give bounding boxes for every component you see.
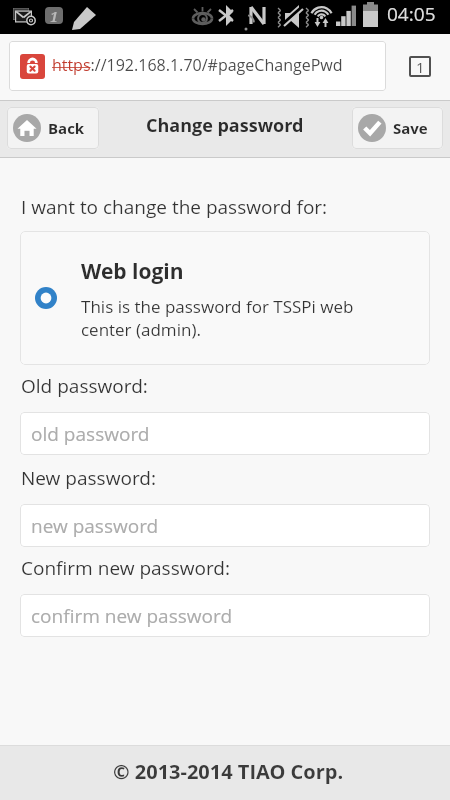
- button[interactable]: Back: [7, 107, 99, 149]
- staticText: Old password:: [21, 373, 148, 399]
- button[interactable]: Save: [352, 107, 443, 149]
- button[interactable]: confirm new password: [20, 594, 430, 637]
- staticText: confirm new password: [31, 603, 233, 629]
- staticText: 1: [50, 7, 58, 24]
- staticText: Web login: [81, 257, 184, 286]
- staticText: New password:: [21, 465, 156, 491]
- staticText: Back: [48, 118, 85, 138]
- staticText: 04:05: [387, 1, 436, 27]
- staticText: old password: [31, 421, 150, 447]
- staticText: © 2013-2014 TIAO Corp.: [113, 758, 344, 785]
- staticText: Save: [393, 118, 428, 138]
- staticText: I want to change the password for:: [21, 194, 328, 220]
- staticText: Change password: [146, 113, 304, 138]
- staticText: 1: [416, 57, 425, 77]
- button[interactable]: Web login: [20, 231, 430, 365]
- staticText: new password: [31, 513, 159, 539]
- staticText: This is the password for TSSPi web cente…: [81, 295, 361, 341]
- button[interactable]: https://192.168.1.70/#pageChangePwd: [9, 41, 386, 91]
- button[interactable]: Tabs: [409, 56, 431, 77]
- staticText: https://192.168.1.70/#pageChangePwd: [52, 54, 343, 76]
- button[interactable]: new password: [20, 504, 430, 547]
- staticText: Confirm new password:: [21, 555, 231, 581]
- button[interactable]: old password: [20, 412, 430, 455]
